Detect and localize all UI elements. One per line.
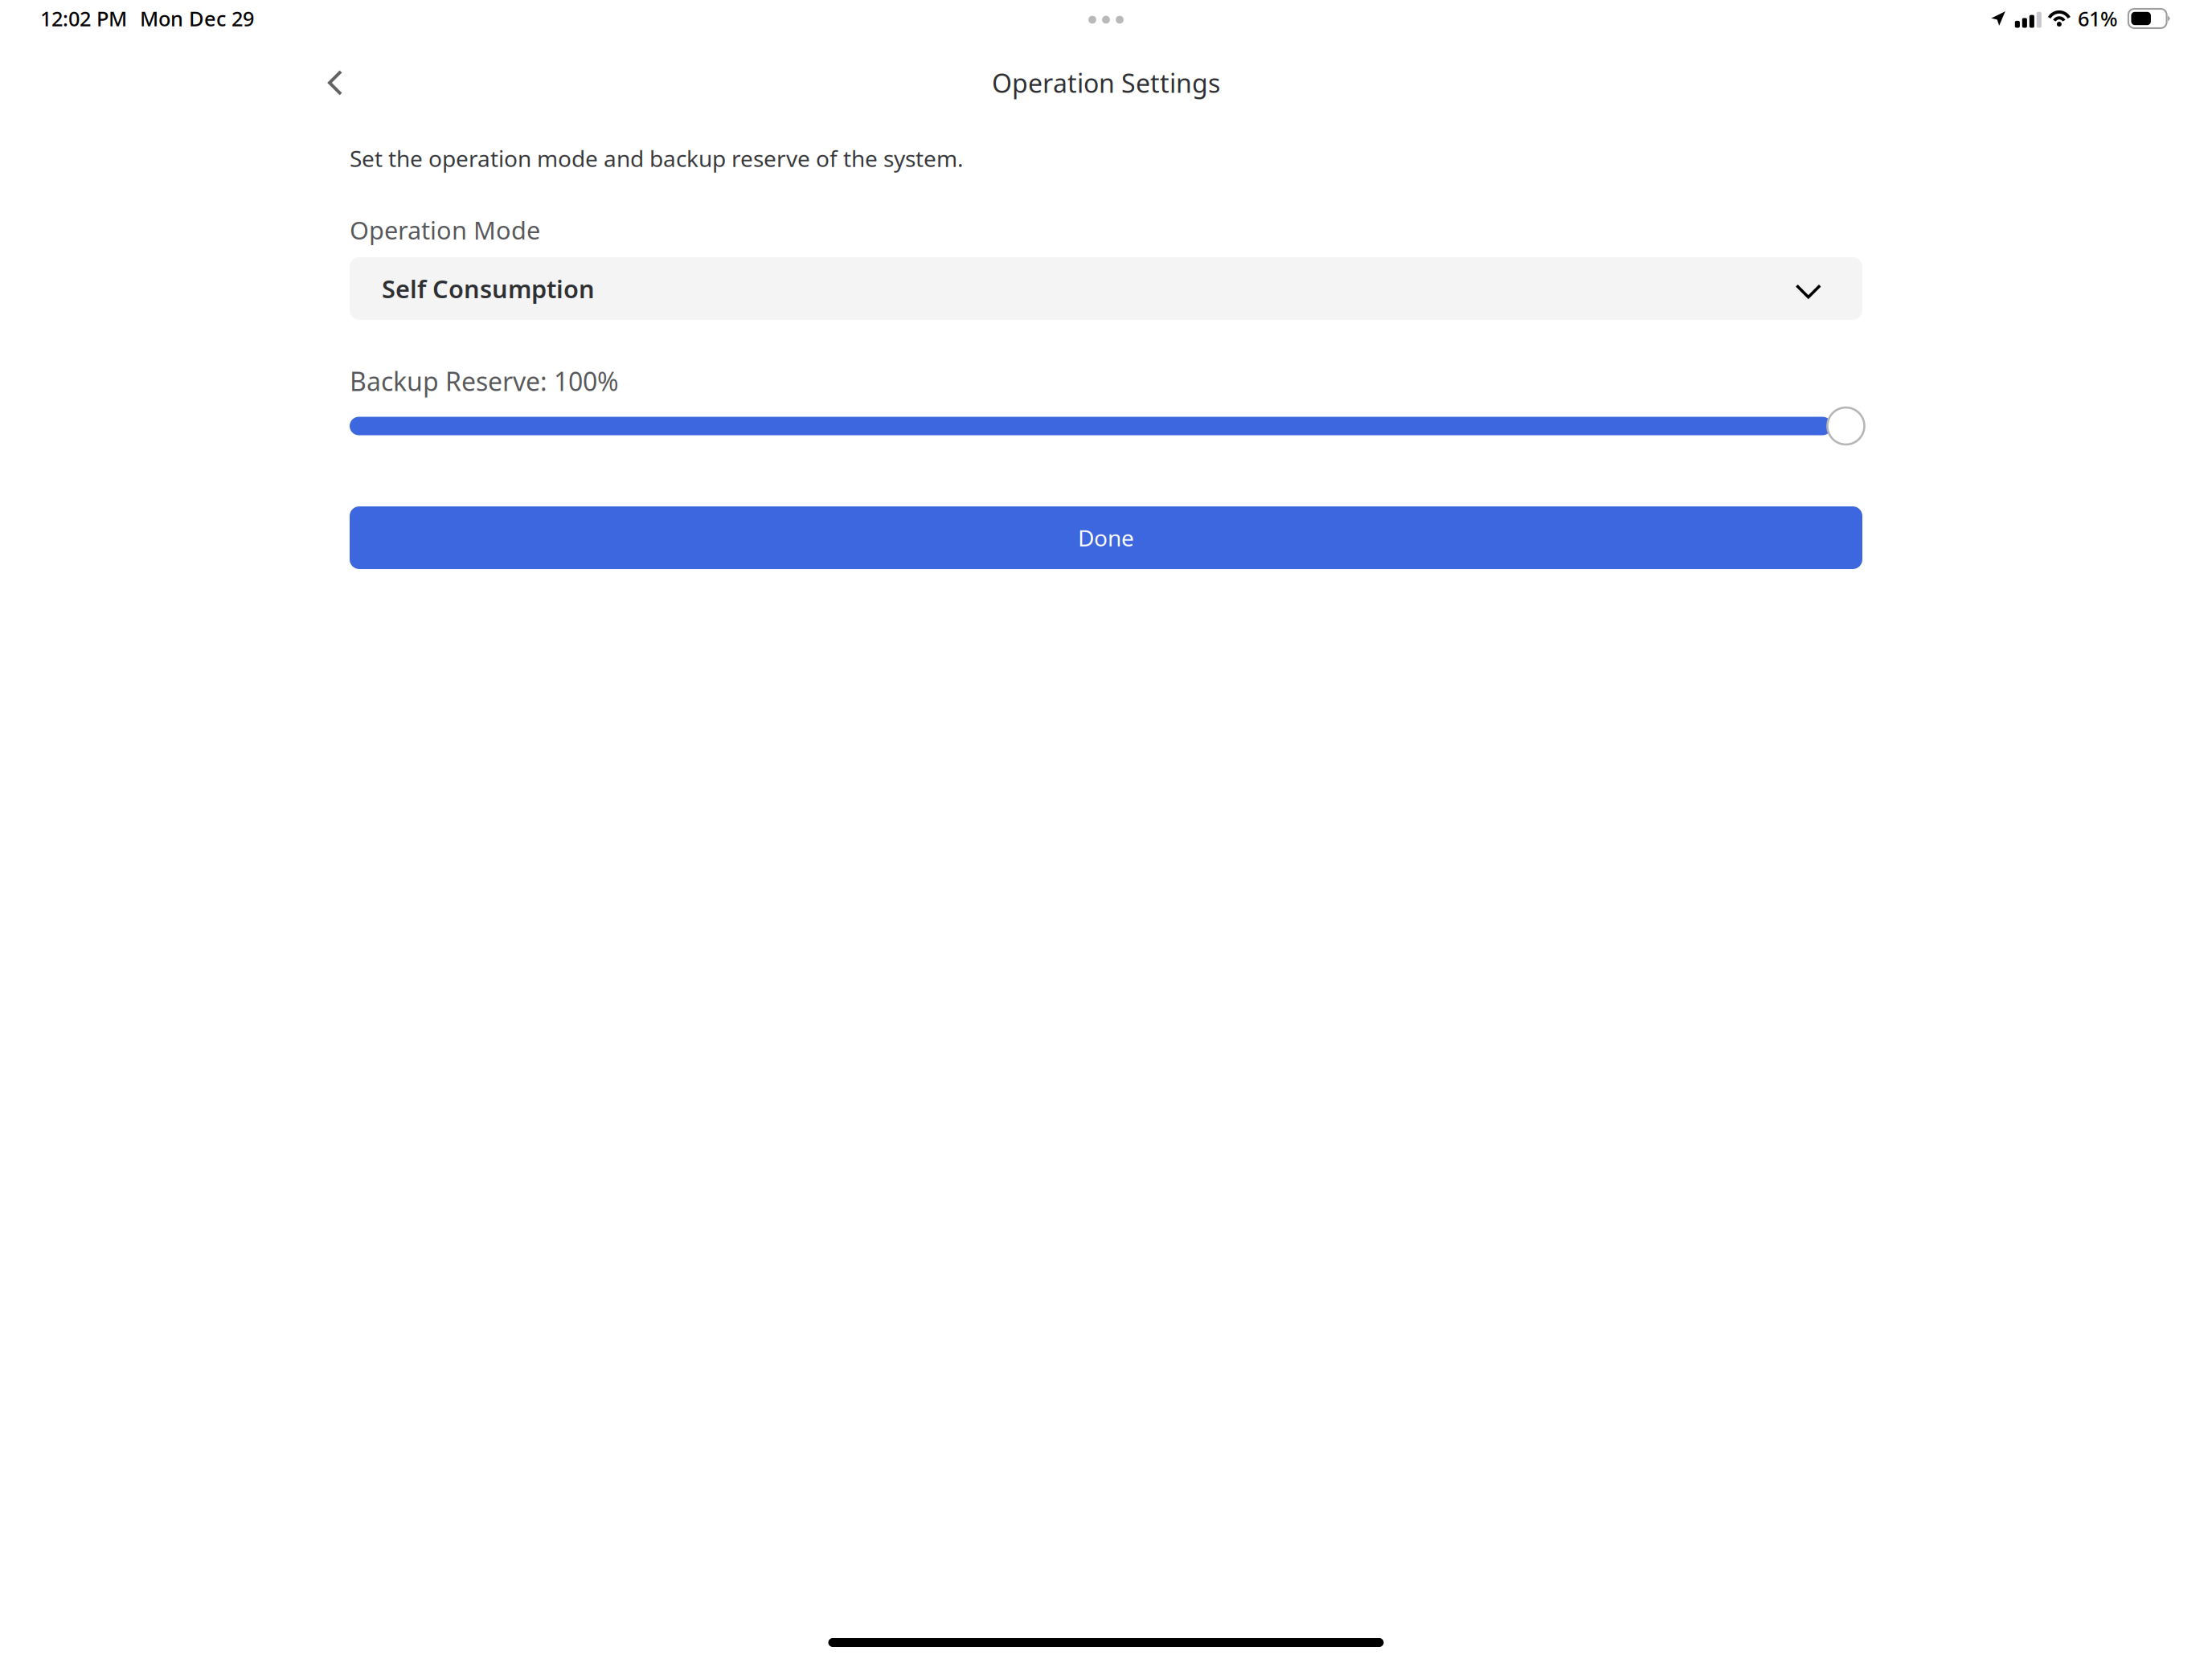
button[interactable]: Done [350, 506, 1862, 569]
staticText: Self Consumption [382, 272, 595, 305]
button[interactable]: Back [305, 56, 366, 109]
staticText: Mon Dec 29 [140, 5, 254, 32]
staticText: 61% [2078, 5, 2118, 32]
staticText: Backup Reserve: 100% [350, 364, 619, 398]
staticText: Operation Settings [992, 66, 1220, 100]
staticText: 12:02 PM [40, 5, 127, 32]
staticText: Operation Mode [350, 213, 540, 246]
button[interactable]: Self Consumption [350, 257, 1862, 320]
staticText: Done [1078, 523, 1134, 553]
staticText: Set the operation mode and backup reserv… [350, 143, 964, 173]
